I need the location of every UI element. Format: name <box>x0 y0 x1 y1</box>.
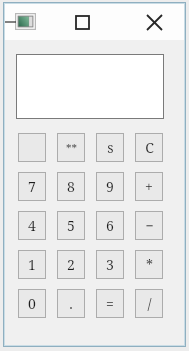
staticText: 0 <box>28 294 36 313</box>
staticText: ** <box>66 140 77 155</box>
button[interactable]: 7 <box>18 172 46 201</box>
button[interactable]: System menu <box>15 13 36 30</box>
button[interactable]: 8 <box>57 172 85 201</box>
staticText: + <box>145 177 153 196</box>
staticText: * <box>146 255 153 274</box>
button[interactable]: * <box>135 250 163 279</box>
button[interactable]: ** <box>57 133 85 162</box>
button[interactable]: C <box>135 133 163 162</box>
staticText: . <box>69 294 73 313</box>
button[interactable]: + <box>135 172 163 201</box>
button[interactable]: 9 <box>96 172 124 201</box>
button[interactable]: 0 <box>18 289 46 318</box>
staticText: / <box>147 294 152 313</box>
staticText: 6 <box>106 216 114 235</box>
staticText: 5 <box>67 216 75 235</box>
button[interactable]: 5 <box>57 211 85 240</box>
staticText: s <box>107 138 114 157</box>
button[interactable]: Close <box>143 11 165 33</box>
staticText: = <box>106 294 114 313</box>
button[interactable]: s <box>96 133 124 162</box>
button[interactable]: / <box>135 289 163 318</box>
staticText: 3 <box>106 255 114 274</box>
button[interactable]: 4 <box>18 211 46 240</box>
button[interactable]: 6 <box>96 211 124 240</box>
staticText: 9 <box>106 177 114 196</box>
button[interactable]: Blank key <box>18 133 46 162</box>
staticText: 8 <box>67 177 75 196</box>
staticText: 4 <box>28 216 36 235</box>
button[interactable]: = <box>96 289 124 318</box>
staticText: C <box>145 138 154 157</box>
staticText: 7 <box>28 177 36 196</box>
staticText: 1 <box>28 255 36 274</box>
button[interactable]: 3 <box>96 250 124 279</box>
button[interactable] <box>16 54 164 119</box>
staticText: − <box>145 216 154 235</box>
button[interactable]: . <box>57 289 85 318</box>
button[interactable]: − <box>135 211 163 240</box>
button[interactable]: 2 <box>57 250 85 279</box>
button[interactable]: Maximize <box>72 12 92 32</box>
staticText: 2 <box>67 255 75 274</box>
button[interactable]: 1 <box>18 250 46 279</box>
